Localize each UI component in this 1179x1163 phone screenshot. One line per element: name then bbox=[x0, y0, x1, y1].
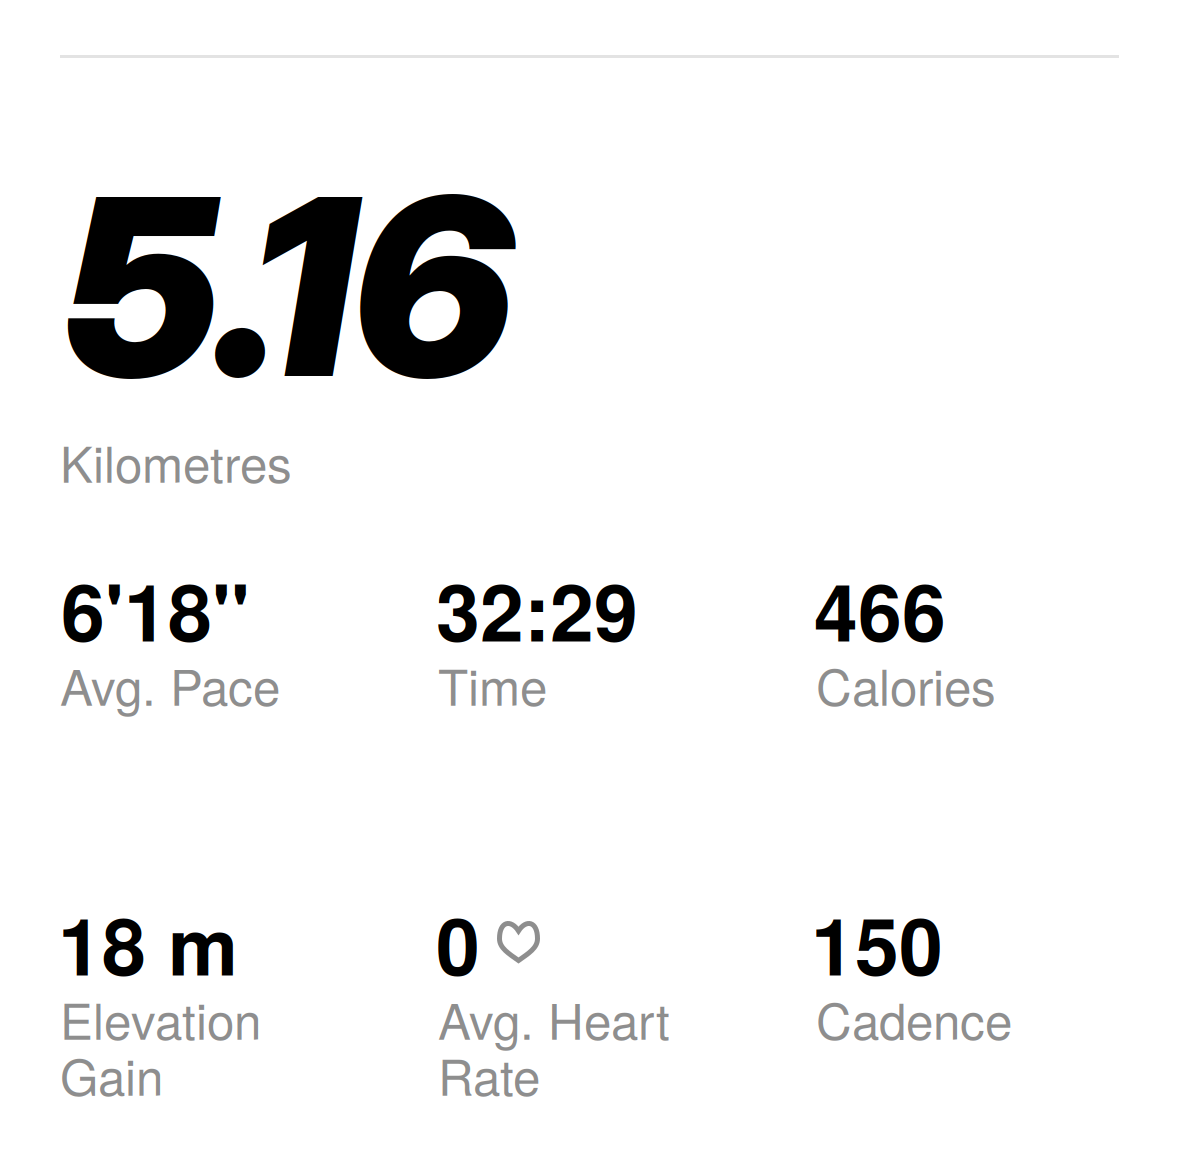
button[interactable]: Time: 32:29 bbox=[438, 553, 816, 763]
staticText: 150 bbox=[811, 887, 943, 1000]
staticText: 32:29 bbox=[436, 553, 638, 666]
button[interactable]: Distance: 5.16 Kilometres bbox=[60, 86, 1119, 506]
staticText: Cadence bbox=[816, 983, 1012, 1054]
staticText: 466 bbox=[814, 553, 946, 666]
staticText: Avg. Heart bbox=[438, 983, 670, 1054]
staticText: Calories bbox=[816, 649, 996, 720]
staticText: 5.16 bbox=[65, 137, 512, 435]
button[interactable]: Avg. Heart Rate: 0 bbox=[438, 887, 816, 1097]
staticText: Time bbox=[438, 649, 547, 720]
staticText: 6'18'' bbox=[61, 553, 250, 666]
staticText: Kilometres bbox=[60, 426, 292, 497]
staticText: 18 m bbox=[58, 887, 238, 1000]
button[interactable]: Cadence: 150 bbox=[816, 887, 1179, 1097]
button[interactable]: Avg. Pace: 6'18'' bbox=[60, 553, 438, 763]
button[interactable]: Elevation Gain: 18 m bbox=[60, 887, 438, 1097]
staticText: Avg. Pace bbox=[60, 649, 280, 720]
staticText: 0 bbox=[436, 887, 480, 1000]
staticText: Elevation bbox=[60, 983, 261, 1054]
staticText: Gain bbox=[60, 1039, 163, 1110]
button[interactable]: Calories: 466 bbox=[816, 553, 1179, 763]
staticText: Rate bbox=[438, 1039, 540, 1110]
